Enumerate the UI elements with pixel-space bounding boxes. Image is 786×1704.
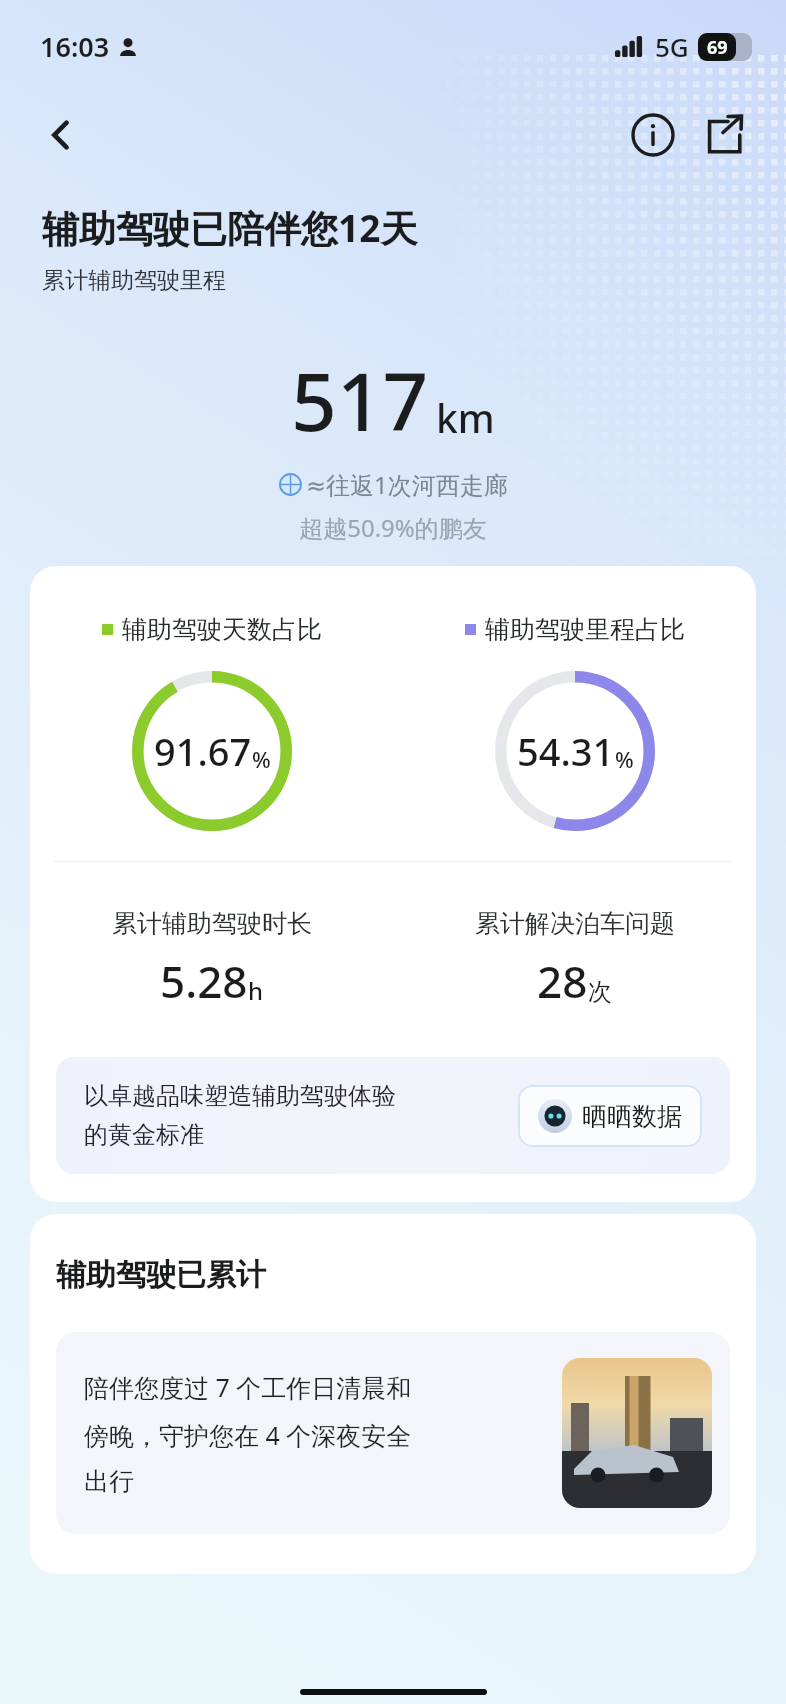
staticText: 累计解决泊车问题	[475, 908, 675, 939]
staticText: 次	[588, 977, 612, 1007]
staticText: ≈往返1次河西走廊	[306, 468, 508, 501]
staticText: 辅助驾驶已陪伴您12天	[42, 202, 418, 253]
staticText: 69	[707, 35, 728, 60]
staticText: 16:03	[40, 28, 110, 65]
staticText: 54.31	[517, 725, 615, 777]
staticText: h	[248, 974, 264, 1007]
staticText: 5.28	[160, 951, 248, 1011]
button[interactable]: Share	[694, 106, 752, 164]
button[interactable]: 晒晒数据	[518, 1085, 702, 1147]
button[interactable]: Back	[32, 106, 90, 164]
staticText: 出行	[84, 1466, 134, 1497]
staticText: 5G	[655, 29, 689, 64]
staticText: 91.67	[154, 725, 252, 777]
staticText: 累计辅助驾驶时长	[112, 908, 312, 939]
staticText: 辅助驾驶天数占比	[122, 614, 322, 645]
staticText: 28	[537, 951, 588, 1011]
staticText: km	[436, 391, 495, 444]
staticText: %	[615, 744, 634, 774]
staticText: 的黄金标准	[84, 1120, 204, 1150]
staticText: 以卓越品味塑造辅助驾驶体验	[84, 1081, 396, 1111]
staticText: 晒晒数据	[582, 1101, 682, 1132]
staticText: 陪伴您度过 7 个工作日清晨和	[84, 1370, 412, 1404]
staticText: 517	[291, 345, 429, 454]
staticText: %	[252, 744, 271, 774]
staticText: 辅助驾驶已累计	[56, 1256, 266, 1294]
staticText: 辅助驾驶里程占比	[485, 614, 685, 645]
staticText: 累计辅助驾驶里程	[42, 266, 226, 295]
staticText: 超越50.9%的鹏友	[0, 511, 786, 544]
button[interactable]: Info	[624, 106, 682, 164]
staticText: 傍晚，守护您在 4 个深夜安全	[84, 1418, 412, 1452]
